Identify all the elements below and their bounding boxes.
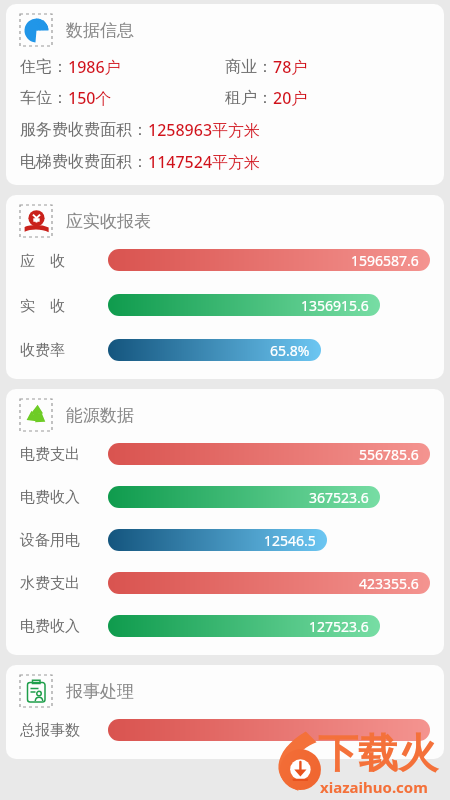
staticText: 12546.5 xyxy=(264,531,316,550)
staticText: 收费率 xyxy=(20,341,108,360)
button[interactable]: 应 收 xyxy=(20,243,430,277)
staticText: 423355.6 xyxy=(359,574,419,593)
button[interactable]: 应实收报表 xyxy=(20,205,52,237)
staticText: 1258963平方米 xyxy=(148,119,261,141)
staticText: 556785.6 xyxy=(359,445,419,464)
button[interactable]: 应实收报表 xyxy=(20,205,430,237)
staticText: 报事处理 xyxy=(66,681,134,702)
staticText: xiazaihuo.com xyxy=(320,777,428,797)
staticText: 实 收 xyxy=(20,295,108,315)
button[interactable]: 电费收入 xyxy=(20,480,430,514)
staticText: 服务费收费面积： xyxy=(20,120,148,140)
staticText: 应 收 xyxy=(20,250,108,270)
button[interactable]: 总报事数 xyxy=(20,713,430,747)
button[interactable]: 报事处理 xyxy=(20,675,52,707)
button[interactable]: 数据信息 xyxy=(20,14,52,46)
staticText: 电梯费收费面积： xyxy=(20,152,148,172)
button[interactable]: 设备用电 xyxy=(20,523,430,557)
staticText: 电费支出 xyxy=(20,445,108,464)
staticText: 车位： xyxy=(20,88,68,108)
button[interactable]: 实 收 xyxy=(20,288,430,322)
staticText: 数据信息 xyxy=(66,20,134,41)
staticText: 367523.6 xyxy=(309,488,369,507)
button[interactable]: 数据信息 xyxy=(20,14,430,46)
staticText: 住宅： xyxy=(20,57,68,77)
staticText: 商业： xyxy=(225,57,273,77)
staticText: 150个 xyxy=(68,87,112,109)
staticText: 127523.6 xyxy=(309,617,369,636)
button[interactable]: 水费支出 xyxy=(20,566,430,600)
staticText: 1596587.6 xyxy=(351,251,419,270)
button[interactable]: 收费率 xyxy=(20,333,430,367)
staticText: 电费收入 xyxy=(20,617,108,636)
button[interactable]: 电费支出 xyxy=(20,437,430,471)
staticText: 1356915.6 xyxy=(301,296,369,315)
button[interactable]: 能源数据 xyxy=(20,399,430,431)
staticText: 65.8% xyxy=(270,341,310,360)
staticText: 电费收入 xyxy=(20,488,108,507)
staticText: 20户 xyxy=(273,87,308,109)
staticText: 1986户 xyxy=(68,56,121,78)
staticText: 设备用电 xyxy=(20,531,108,550)
button[interactable]: 能源数据 xyxy=(20,399,52,431)
staticText: 1147524平方米 xyxy=(148,151,261,173)
staticText: 下载火 xyxy=(318,728,438,778)
button[interactable]: 报事处理 xyxy=(20,675,430,707)
staticText: 应实收报表 xyxy=(66,211,151,232)
staticText: 租户： xyxy=(225,88,273,108)
button[interactable]: 电费收入 xyxy=(20,609,430,643)
staticText: 能源数据 xyxy=(66,405,134,426)
staticText: 总报事数 xyxy=(20,721,108,740)
staticText: 78户 xyxy=(273,56,308,78)
staticText: 水费支出 xyxy=(20,574,108,593)
